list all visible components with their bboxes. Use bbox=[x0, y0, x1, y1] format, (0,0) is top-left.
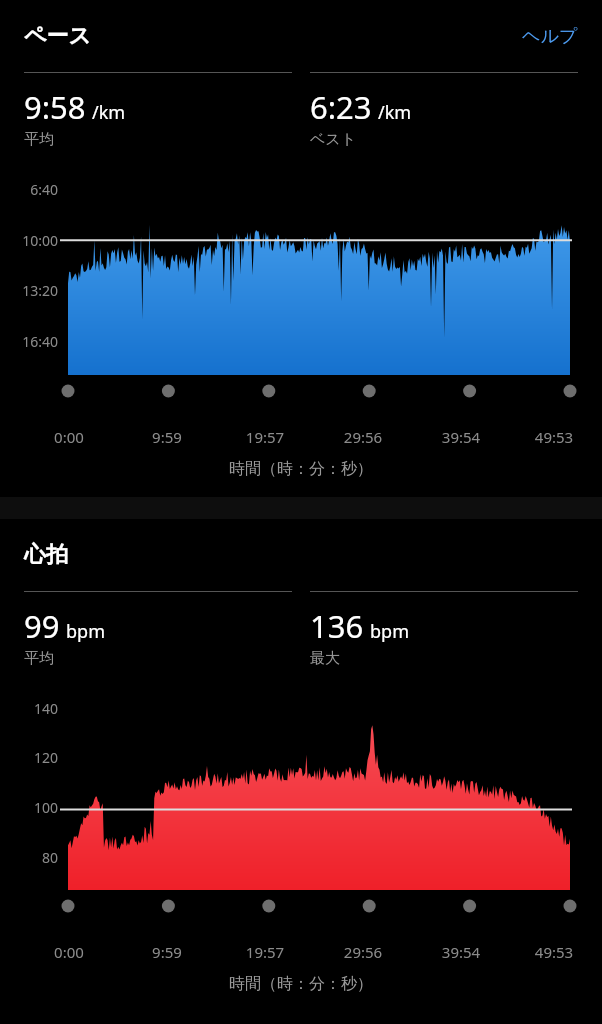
staticText: bpm bbox=[66, 619, 105, 644]
staticText: 80 bbox=[0, 848, 58, 867]
staticText: bpm bbox=[370, 619, 409, 644]
button[interactable]: 136 bbox=[310, 591, 578, 668]
staticText: 49:53 bbox=[510, 427, 598, 447]
staticText: 140 bbox=[0, 699, 58, 718]
staticText: 6:40 bbox=[0, 180, 58, 199]
staticText: 16:40 bbox=[0, 332, 58, 351]
staticText: 39:54 bbox=[412, 942, 510, 962]
staticText: 最大 bbox=[310, 649, 340, 668]
button[interactable]: ヘルプ bbox=[522, 25, 578, 48]
staticText: 0:00 bbox=[20, 427, 118, 447]
staticText: 心拍 bbox=[24, 541, 68, 569]
staticText: 6:23 bbox=[310, 86, 372, 128]
staticText: /km bbox=[378, 100, 412, 125]
staticText: 0:00 bbox=[20, 942, 118, 962]
staticText: 9:59 bbox=[118, 427, 216, 447]
staticText: 19:57 bbox=[216, 427, 314, 447]
staticText: 10:00 bbox=[0, 231, 58, 250]
staticText: ベスト bbox=[310, 130, 357, 149]
staticText: 100 bbox=[0, 798, 58, 817]
staticText: 時間（時：分：秒） bbox=[0, 974, 602, 994]
staticText: ペース bbox=[24, 22, 92, 50]
staticText: 49:53 bbox=[510, 942, 598, 962]
button[interactable]: 99 bbox=[24, 591, 292, 668]
button[interactable]: 9:58 bbox=[24, 72, 292, 149]
button[interactable]: 6:23 bbox=[310, 72, 578, 149]
staticText: /km bbox=[92, 100, 126, 125]
staticText: 29:56 bbox=[314, 942, 412, 962]
staticText: ヘルプ bbox=[522, 25, 578, 48]
staticText: 136 bbox=[310, 605, 364, 647]
staticText: 19:57 bbox=[216, 942, 314, 962]
staticText: 時間（時：分：秒） bbox=[0, 459, 602, 479]
staticText: 9:59 bbox=[118, 942, 216, 962]
staticText: 120 bbox=[0, 748, 58, 767]
staticText: 9:58 bbox=[24, 86, 86, 128]
staticText: 平均 bbox=[24, 649, 54, 668]
staticText: 平均 bbox=[24, 130, 54, 149]
staticText: 39:54 bbox=[412, 427, 510, 447]
staticText: 29:56 bbox=[314, 427, 412, 447]
staticText: 99 bbox=[24, 605, 60, 647]
staticText: 13:20 bbox=[0, 281, 58, 300]
